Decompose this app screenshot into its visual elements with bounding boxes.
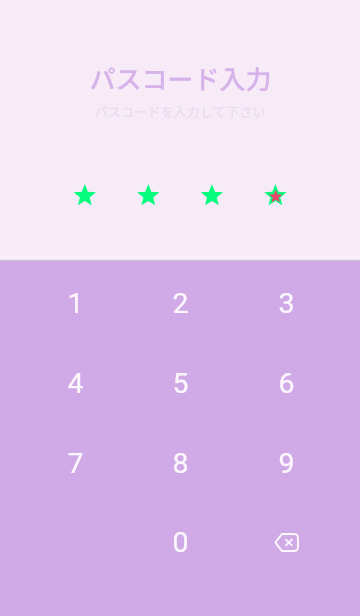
staticText: 5 (172, 367, 189, 400)
button[interactable]: Delete (240, 510, 332, 574)
button[interactable]: 1 (29, 271, 121, 335)
staticText: 8 (172, 447, 189, 480)
staticText: 4 (67, 367, 84, 400)
staticText: パスコードを入力して下さい (94, 102, 266, 121)
staticText: 2 (172, 287, 189, 320)
staticText: 3 (278, 287, 295, 320)
button[interactable]: 3 (240, 271, 332, 335)
staticText: パスコード入力 (89, 59, 272, 97)
button[interactable]: 2 (134, 271, 226, 335)
staticText: 1 (67, 287, 84, 320)
staticText: 7 (67, 447, 84, 480)
button[interactable]: 9 (240, 431, 332, 495)
button[interactable]: 4 (29, 351, 121, 415)
staticText: 6 (278, 367, 295, 400)
button[interactable]: 6 (240, 351, 332, 415)
button[interactable]: 5 (134, 351, 226, 415)
staticText: 0 (172, 526, 189, 559)
button[interactable]: 7 (29, 431, 121, 495)
staticText: 9 (278, 447, 295, 480)
button[interactable]: 0 (134, 510, 226, 574)
button[interactable]: 8 (134, 431, 226, 495)
